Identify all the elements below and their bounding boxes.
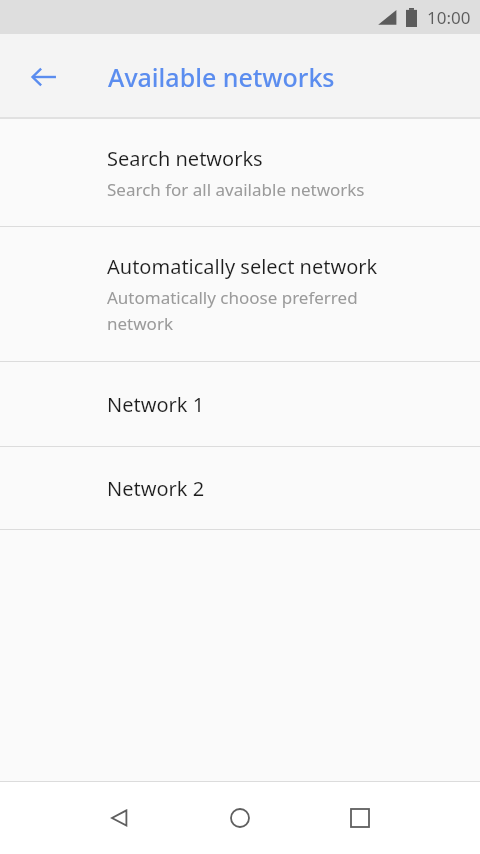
- button[interactable]: Network 2: [0, 447, 480, 529]
- staticText: Network 2: [107, 475, 205, 502]
- staticText: Network 1: [107, 391, 205, 418]
- staticText: Search for all available networks: [107, 178, 365, 201]
- staticText: 10:00: [427, 6, 471, 29]
- button[interactable]: Recent apps: [336, 794, 384, 842]
- button[interactable]: Automatically select network: [0, 227, 480, 361]
- button[interactable]: Back: [96, 794, 144, 842]
- button[interactable]: Search networks: [0, 119, 480, 226]
- staticText: Automatically select network: [107, 253, 378, 280]
- staticText: Available networks: [108, 60, 335, 94]
- button[interactable]: Home: [216, 794, 264, 842]
- button[interactable]: Back: [20, 53, 68, 101]
- button[interactable]: Network 1: [0, 362, 480, 446]
- staticText: Search networks: [107, 145, 263, 172]
- staticText: Automatically choose preferred network: [107, 286, 358, 335]
